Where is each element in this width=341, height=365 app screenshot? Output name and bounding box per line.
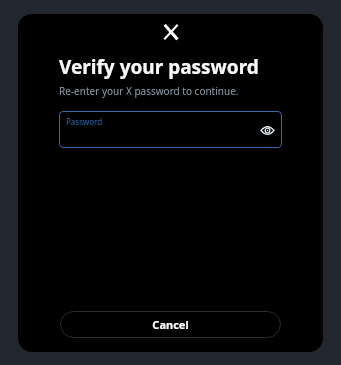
staticText: Verify your password <box>59 54 259 80</box>
staticText: Re-enter your X password to continue. <box>59 84 239 98</box>
button[interactable]: Password <box>59 111 282 148</box>
other: X logo <box>163 24 179 40</box>
button[interactable]: Show password <box>256 119 278 141</box>
button[interactable]: Cancel <box>60 311 281 338</box>
staticText: Cancel <box>152 317 189 332</box>
staticText: Password <box>66 116 103 127</box>
